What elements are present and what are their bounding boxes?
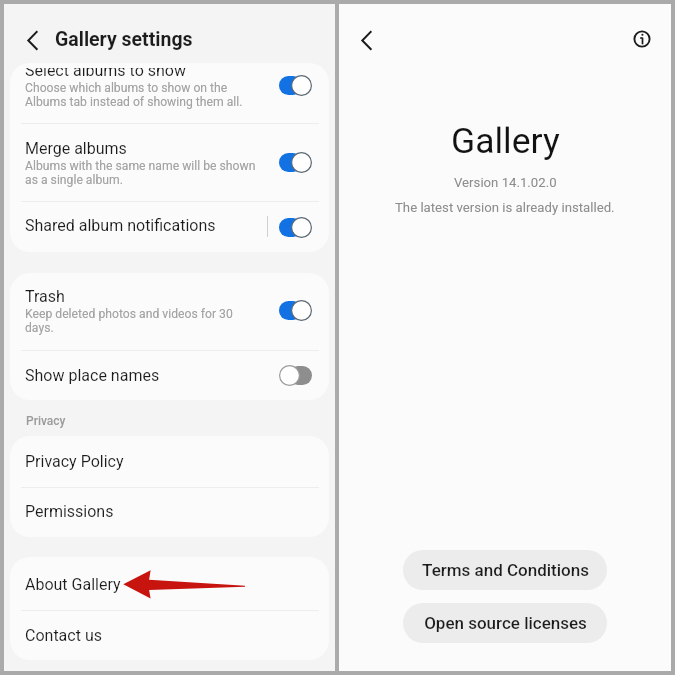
staticText: Choose which albums to show on the Album… xyxy=(25,81,243,109)
staticText: About Gallery xyxy=(25,575,121,594)
button[interactable]: Open source licenses xyxy=(403,603,607,643)
button[interactable]: About Gallery xyxy=(10,557,329,610)
staticText: Contact us xyxy=(25,626,102,645)
staticText: Albums with the same name will be shown … xyxy=(25,159,256,187)
button[interactable]: Terms and Conditions xyxy=(403,550,607,590)
staticText: Open source licenses xyxy=(424,613,587,633)
button[interactable]: Back xyxy=(18,26,46,54)
button[interactable]: Privacy Policy xyxy=(10,436,329,487)
staticText: Shared album notifications xyxy=(25,216,216,235)
staticText: Permissions xyxy=(25,502,114,521)
staticText: The latest version is already installed. xyxy=(395,200,615,215)
staticText: Trash xyxy=(25,287,65,306)
button[interactable]: Merge albums xyxy=(10,124,329,201)
staticText: Terms and Conditions xyxy=(422,560,589,580)
staticText: Select albums to show xyxy=(25,68,186,80)
staticText: Gallery xyxy=(451,120,560,162)
button[interactable]: Info xyxy=(628,25,656,53)
staticText: Merge albums xyxy=(25,139,127,158)
button[interactable]: Permissions xyxy=(10,488,329,537)
button[interactable]: Select albums to show xyxy=(10,68,329,123)
staticText: Privacy xyxy=(26,414,66,428)
staticText: Keep deleted photos and videos for 30 da… xyxy=(25,307,233,335)
button[interactable]: Back xyxy=(352,26,380,54)
staticText: Show place names xyxy=(25,366,160,385)
button[interactable]: Trash xyxy=(10,273,329,350)
staticText: Privacy Policy xyxy=(25,452,124,471)
staticText: Version 14.1.02.0 xyxy=(454,175,557,190)
button[interactable]: Show place names xyxy=(10,351,329,400)
button[interactable]: Contact us xyxy=(10,611,329,660)
staticText: Gallery settings xyxy=(55,28,193,51)
button[interactable]: Shared album notifications xyxy=(10,202,329,252)
